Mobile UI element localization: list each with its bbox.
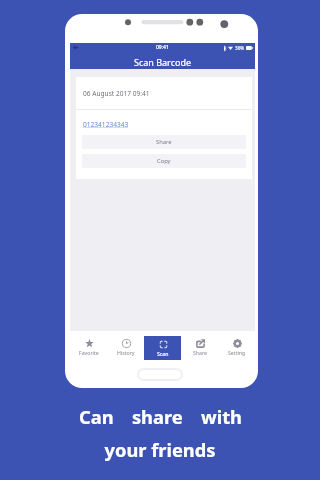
button[interactable]: Setting xyxy=(218,331,255,363)
staticText: Setting xyxy=(228,349,246,356)
staticText: 012341234343 xyxy=(83,120,129,129)
button[interactable]: Share xyxy=(82,135,246,149)
button[interactable]: Favorite xyxy=(70,331,107,363)
staticText: Can share with xyxy=(79,404,242,429)
staticText: Favorite xyxy=(79,349,99,356)
staticText: History xyxy=(117,349,135,356)
button[interactable]: History xyxy=(107,331,144,363)
button[interactable]: Scan xyxy=(144,336,181,360)
staticText: 06 August 2017 09:41 xyxy=(83,89,150,98)
staticText: your friends xyxy=(104,437,216,462)
button[interactable]: Share xyxy=(181,331,218,363)
staticText: Copy xyxy=(157,157,171,165)
staticText: Scan xyxy=(157,350,169,357)
staticText: 09:41 xyxy=(156,44,169,51)
staticText: Share xyxy=(156,138,172,146)
staticText: 36% xyxy=(235,45,245,51)
button[interactable]: 012341234343 xyxy=(83,118,129,130)
staticText: Share xyxy=(193,349,207,356)
staticText: Scan Barcode xyxy=(134,56,192,68)
button[interactable]: Copy xyxy=(82,154,246,168)
